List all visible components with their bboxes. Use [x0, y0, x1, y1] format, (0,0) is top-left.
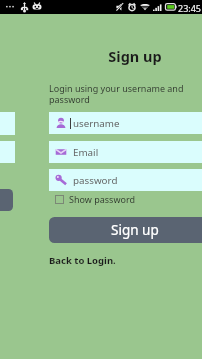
staticText: Sign up: [111, 221, 159, 239]
button[interactable]: Email: [49, 141, 202, 163]
staticText: Sign up: [49, 46, 202, 66]
staticText: Show password: [69, 193, 135, 205]
button[interactable]: Show password: [55, 193, 135, 205]
staticText: Login using your username and password: [49, 82, 190, 106]
staticText: Email: [73, 146, 99, 159]
staticText: password: [73, 174, 118, 187]
staticText: username: [73, 117, 120, 130]
button[interactable]: Sign up: [49, 217, 202, 243]
button[interactable]: password: [49, 169, 202, 191]
button[interactable]: username: [49, 112, 202, 134]
staticText: 23:45: [178, 2, 202, 14]
button[interactable]: Back to Login.: [49, 254, 116, 267]
